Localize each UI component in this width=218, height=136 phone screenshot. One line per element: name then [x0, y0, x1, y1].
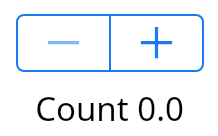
- button[interactable]: Decrease count: [18, 16, 109, 70]
- button[interactable]: Increase count: [111, 16, 202, 70]
- staticText: Count 0.0: [35, 86, 184, 131]
